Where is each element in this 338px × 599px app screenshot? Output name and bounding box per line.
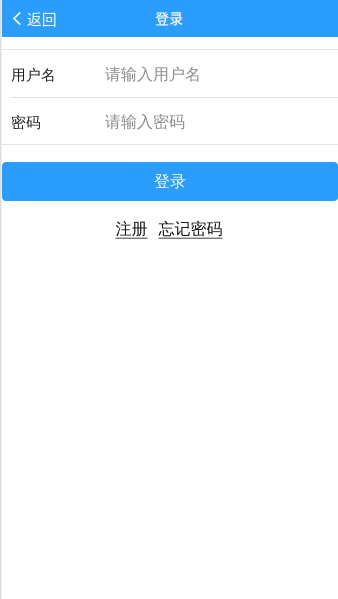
staticText: 忘记密码 [158, 219, 222, 239]
staticText: 登录 [154, 172, 186, 191]
button[interactable]: 登录 [2, 162, 338, 201]
staticText: 登录 [155, 7, 183, 28]
staticText: 请输入密码 [105, 112, 185, 132]
button[interactable]: 返回 [0, 0, 67, 37]
staticText: 密码 [11, 113, 41, 131]
staticText: 用户名 [11, 66, 56, 84]
staticText: 注册 [115, 219, 147, 239]
button[interactable]: 忘记密码 [158, 219, 222, 239]
button[interactable]: 注册 [115, 219, 147, 239]
staticText: 返回 [27, 8, 57, 29]
staticText: 请输入用户名 [105, 65, 201, 84]
